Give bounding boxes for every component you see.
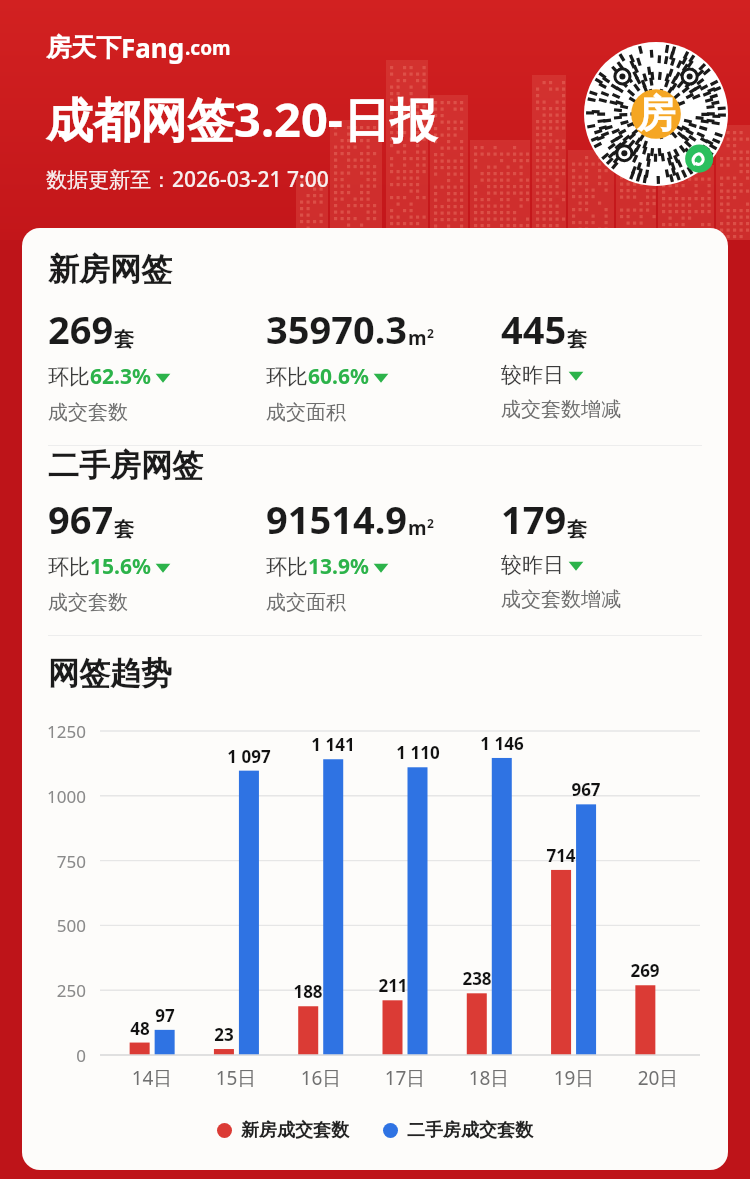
staticText: 二手房成交套数 [407,1119,533,1142]
staticText: 1 110 [390,741,446,764]
staticText: 2 [427,325,434,341]
staticText: 套 [567,327,587,352]
staticText: 15日 [202,1065,270,1091]
staticText: 房天下 [46,32,121,63]
staticText: 15.6% [90,552,151,581]
staticText: 97 [137,1004,193,1027]
staticText: 较昨日 [501,552,564,578]
staticText: 成交面积 [266,400,346,425]
staticText: 套 [114,517,134,542]
staticText: m [408,325,427,351]
staticText: 14日 [118,1065,186,1091]
staticText: 较昨日 [501,362,564,388]
staticText: 60.6% [308,362,369,391]
staticText: 188 [280,980,336,1003]
staticText: 1 141 [305,733,361,756]
staticText: 250 [28,979,86,1002]
staticText: 环比 [266,364,308,390]
staticText: m [408,515,427,541]
staticText: 环比 [266,554,308,580]
staticText: 成交面积 [266,590,346,615]
button[interactable]: 445 [501,303,702,422]
button[interactable]: 扫码二维码 [584,42,728,186]
staticText: 179 [501,493,567,545]
button[interactable]: 二手房成交套数 [383,1119,533,1142]
staticText: 成交套数 [48,400,128,425]
staticText: 环比 [48,554,90,580]
staticText: 18日 [455,1065,523,1091]
staticText: 500 [28,914,86,937]
staticText: 17日 [371,1065,439,1091]
button[interactable]: 91514.9 [266,493,501,615]
staticText: 环比 [48,364,90,390]
button[interactable]: 179 [501,493,702,612]
staticText: 13.9% [308,552,369,581]
staticText: 套 [567,517,587,542]
staticText: 62.3% [90,362,151,391]
staticText: 19日 [540,1065,608,1091]
staticText: .com [185,35,231,61]
staticText: 数据更新至：2026-03-21 7:00 [46,165,329,194]
button[interactable]: 35970.3 [266,303,501,425]
staticText: 新房成交套数 [241,1119,349,1142]
staticText: 1250 [28,720,86,743]
staticText: 2 [427,515,434,531]
staticText: 1000 [28,785,86,808]
staticText: 750 [28,850,86,873]
staticText: 269 [617,959,673,982]
staticText: 20日 [624,1065,692,1091]
staticText: 成交套数 [48,590,128,615]
staticText: 0 [28,1044,86,1067]
staticText: 成交套数增减 [501,587,621,612]
staticText: 房 [637,90,675,138]
staticText: 成都网签3.20-日报 [46,87,437,151]
staticText: 211 [365,974,421,997]
staticText: 1 097 [221,745,277,768]
staticText: 网签趋势 [48,654,172,693]
staticText: 967 [48,493,114,545]
button[interactable]: 269 [48,303,266,425]
staticText: 269 [48,303,114,355]
staticText: 新房网签 [48,250,172,289]
staticText: 48 [112,1017,168,1040]
staticText: Fang [121,30,185,65]
button[interactable]: 967 [48,493,266,615]
staticText: 238 [449,967,505,990]
staticText: 35970.3 [266,303,408,355]
staticText: 16日 [287,1065,355,1091]
staticText: 二手房网签 [48,446,203,485]
staticText: 1 146 [474,732,530,755]
staticText: 套 [114,327,134,352]
staticText: 445 [501,303,567,355]
staticText: 91514.9 [266,493,408,545]
staticText: 714 [533,844,589,867]
button[interactable]: 新房成交套数 [217,1119,349,1142]
staticText: 23 [196,1023,252,1046]
staticText: 967 [558,778,614,801]
staticText: 成交套数增减 [501,397,621,422]
